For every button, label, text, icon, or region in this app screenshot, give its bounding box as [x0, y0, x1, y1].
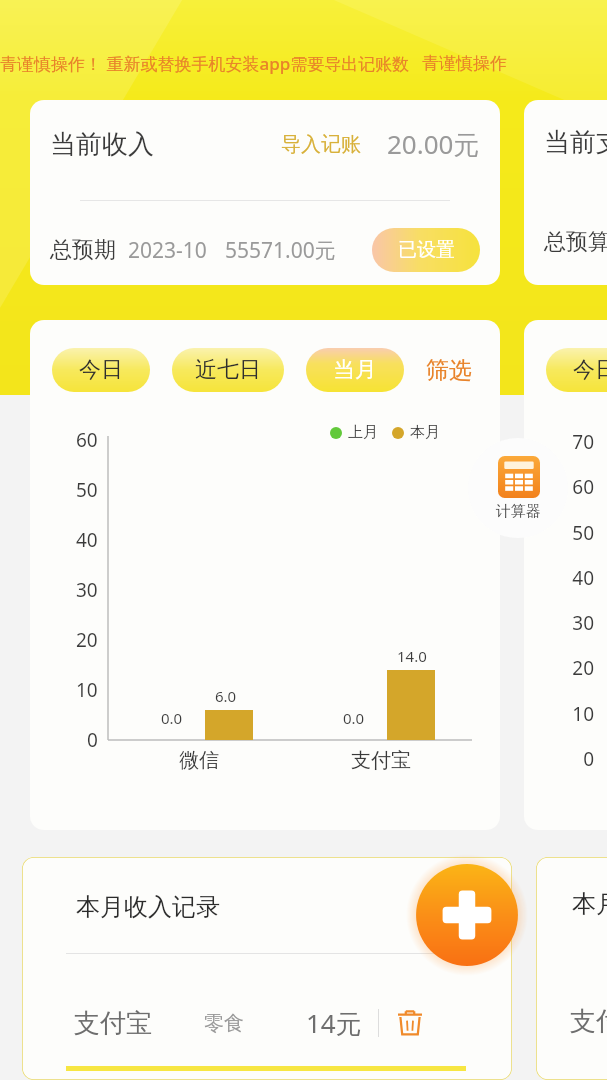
staticText: 近七日 — [195, 356, 261, 384]
staticText: 当前收入 — [50, 128, 154, 161]
staticText: 筛选 — [426, 356, 472, 385]
staticText: 总预算 — [544, 228, 607, 256]
staticText: 已设置 — [398, 238, 455, 262]
staticText: 支付宝 — [351, 748, 411, 773]
staticText: 2023-10 — [128, 236, 207, 265]
staticText: 20 — [572, 655, 594, 681]
staticText: 总预期 — [50, 236, 116, 264]
button[interactable]: 筛选 — [422, 352, 476, 389]
staticText: 上月 — [348, 423, 378, 442]
button[interactable]: 导入记账 — [277, 128, 365, 161]
button[interactable]: 已设置 — [372, 228, 480, 272]
staticText: 按日 — [440, 893, 484, 921]
staticText: 50 — [76, 477, 98, 503]
button[interactable]: 当前收入 — [30, 100, 500, 285]
staticText: 10 — [572, 701, 594, 727]
staticText: 今日 — [573, 356, 607, 384]
staticText: 60 — [572, 474, 594, 500]
staticText: 40 — [572, 565, 594, 591]
staticText: 青谨慎操作 — [422, 53, 507, 74]
staticText: 零食 — [204, 1011, 244, 1036]
staticText: 0.0 — [161, 708, 183, 728]
staticText: 支付 — [570, 1005, 607, 1038]
staticText: 30 — [76, 577, 98, 603]
staticText: 50 — [572, 520, 594, 546]
staticText: 当月 — [333, 356, 377, 384]
button[interactable]: 近七日 — [172, 348, 284, 392]
button[interactable]: 删除 — [393, 1006, 427, 1040]
button[interactable]: 添加记账 — [406, 854, 528, 976]
staticText: 0 — [583, 746, 594, 772]
staticText: 今日 — [79, 356, 123, 384]
staticText: 本月 — [410, 423, 440, 442]
button[interactable]: 当月 — [306, 348, 404, 392]
staticText: 20.00元 — [387, 126, 480, 162]
staticText: 本月 — [572, 889, 607, 919]
staticText: 0 — [87, 727, 98, 753]
staticText: 60 — [76, 427, 98, 453]
staticText: 当前支出 — [544, 126, 607, 159]
staticText: 青谨慎操作！ 重新或替换手机安装app需要导出记账数 — [0, 52, 410, 75]
button[interactable]: 当前支出 — [524, 100, 607, 285]
staticText: 微信 — [179, 748, 219, 773]
button[interactable]: 计算器 — [468, 438, 568, 538]
button[interactable]: 今日 — [52, 348, 150, 392]
button[interactable]: 按日 — [436, 889, 488, 925]
staticText: 14元 — [306, 1005, 362, 1041]
staticText: 20 — [76, 627, 98, 653]
staticText: 本月收入记录 — [76, 892, 220, 922]
staticText: 70 — [572, 429, 594, 455]
staticText: 14.0 — [397, 646, 427, 666]
staticText: 6.0 — [215, 686, 237, 706]
button[interactable]: 今日 — [546, 348, 607, 392]
staticText: 导入记账 — [281, 132, 361, 157]
staticText: 10 — [76, 677, 98, 703]
staticText: 计算器 — [496, 502, 541, 521]
staticText: 支付宝 — [74, 1007, 152, 1040]
staticText: 40 — [76, 527, 98, 553]
staticText: 30 — [572, 610, 594, 636]
staticText: 55571.00元 — [225, 236, 336, 265]
staticText: 0.0 — [343, 708, 365, 728]
